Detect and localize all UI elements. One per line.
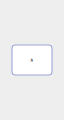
staticText: A bbox=[30, 57, 33, 63]
